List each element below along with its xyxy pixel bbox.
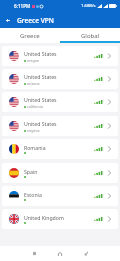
button[interactable]: Back <box>73 246 99 261</box>
button[interactable]: Estonia <box>2 186 118 206</box>
button[interactable]: United States <box>2 116 118 136</box>
button[interactable]: United States <box>2 46 118 66</box>
staticText: United States <box>24 96 57 103</box>
staticText: 6:11PM <box>14 3 31 9</box>
button[interactable]: Romania <box>2 139 118 159</box>
staticText: oregon <box>27 58 40 63</box>
button[interactable]: Home <box>47 246 73 261</box>
staticText: Spain <box>24 168 38 175</box>
staticText: United States <box>24 73 57 80</box>
staticText: United States <box>24 120 57 127</box>
staticText: arizona <box>27 81 40 86</box>
button[interactable]: Recent apps <box>21 246 47 261</box>
staticText: virginia <box>27 128 40 133</box>
staticText: Greece VPN <box>17 16 54 25</box>
staticText: United Kingdom <box>24 214 64 221</box>
staticText: Global <box>81 32 100 40</box>
staticText: Greece <box>20 32 40 40</box>
button[interactable]: Global <box>60 28 120 43</box>
staticText: Romania <box>24 144 46 151</box>
staticText: Estonia <box>24 191 42 198</box>
staticText: 1.68B/s <box>81 3 96 9</box>
staticText: california <box>27 104 43 109</box>
staticText: United States <box>24 50 57 57</box>
button[interactable]: Back <box>0 12 16 28</box>
button[interactable]: United States <box>2 69 118 89</box>
button[interactable]: Spain <box>2 163 118 183</box>
button[interactable]: Greece <box>0 28 60 43</box>
button[interactable]: United States <box>2 92 118 112</box>
button[interactable]: United Kingdom <box>2 209 118 229</box>
